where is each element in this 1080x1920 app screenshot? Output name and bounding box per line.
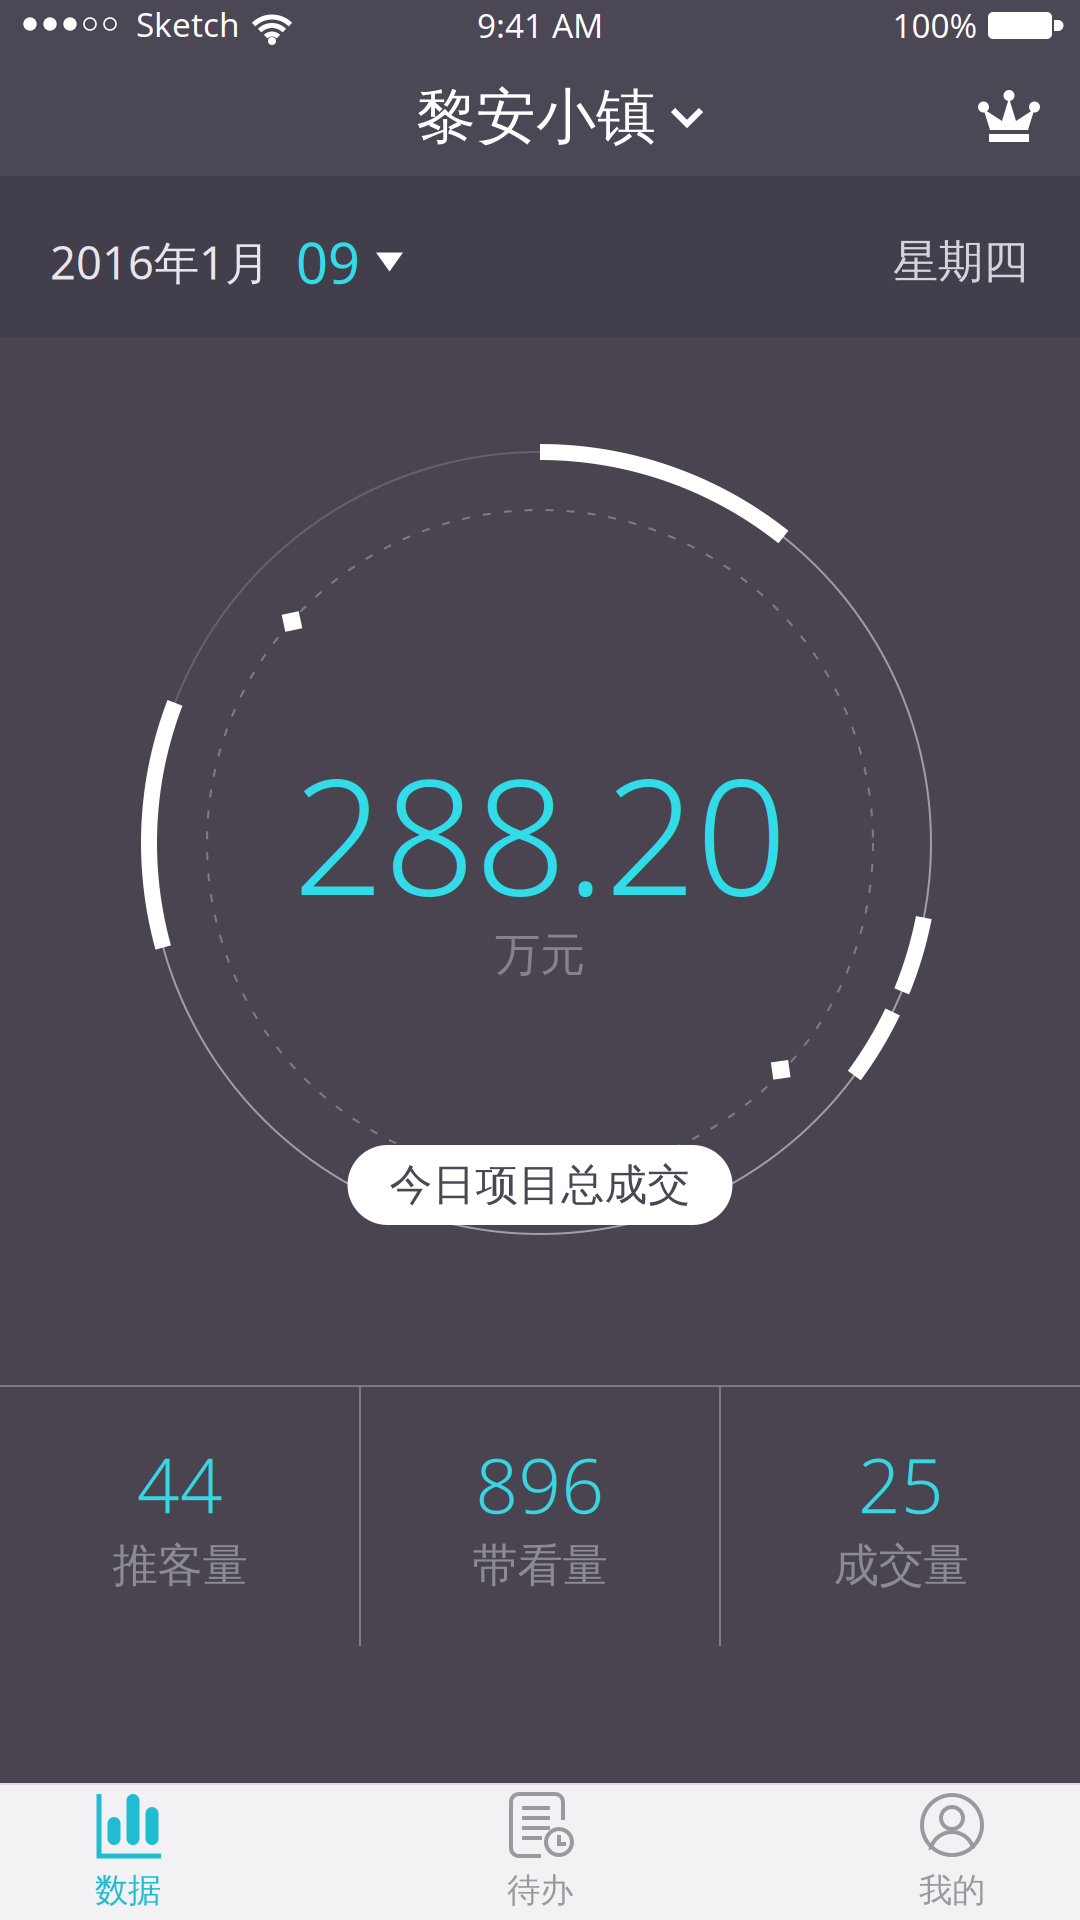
staticText: 896 (475, 1435, 604, 1534)
staticText: 带看量 (472, 1538, 607, 1593)
button[interactable]: 2016年1月 (50, 225, 403, 299)
staticText: 100% (892, 3, 977, 47)
staticText: 星期四 (893, 234, 1028, 290)
button[interactable]: 数据 (0, 1792, 256, 1911)
staticText: 09 (296, 225, 360, 299)
staticText: 9:41 AM (477, 3, 603, 47)
button[interactable]: 我的 (824, 1792, 1080, 1911)
staticText: 推客量 (112, 1538, 247, 1593)
staticText: 数据 (95, 1870, 161, 1911)
staticText: 我的 (919, 1870, 985, 1911)
button[interactable]: 待办 (505, 1792, 575, 1911)
staticText: 288.20 (293, 727, 787, 939)
button[interactable] (978, 90, 1040, 144)
staticText: Sketch (136, 2, 240, 46)
staticText: 44 (137, 1435, 223, 1534)
staticText: 成交量 (833, 1538, 968, 1593)
button[interactable]: 黎安小镇 (416, 80, 704, 154)
staticText: 今日项目总成交 (389, 1159, 690, 1211)
staticText: 25 (858, 1435, 944, 1534)
staticText: 2016年1月 (50, 232, 270, 292)
staticText: 黎安小镇 (416, 80, 656, 154)
staticText: 待办 (507, 1870, 573, 1911)
staticText: 万元 (495, 927, 585, 983)
